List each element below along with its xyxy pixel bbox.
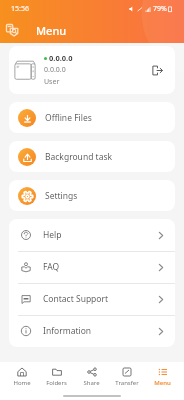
staticText: Home xyxy=(13,379,31,387)
button[interactable]: Logout xyxy=(148,61,166,79)
staticText: Menu xyxy=(36,23,67,38)
button[interactable]: Settings xyxy=(9,180,175,211)
staticText: Menu xyxy=(154,379,171,387)
staticText: Background task xyxy=(45,151,113,163)
button[interactable]: Contact Support xyxy=(9,283,175,315)
button[interactable]: Scan document xyxy=(4,22,20,38)
staticText: Information xyxy=(43,325,92,337)
staticText: Help xyxy=(43,229,62,241)
staticText: 0.0.0.0 xyxy=(44,65,66,75)
button[interactable]: Background task xyxy=(9,141,175,172)
button[interactable]: Home xyxy=(11,367,33,387)
staticText: Settings xyxy=(45,190,78,202)
button[interactable]: Help xyxy=(9,219,175,251)
staticText: User xyxy=(44,77,60,87)
button[interactable]: 0.0.0.0 xyxy=(9,46,175,94)
staticText: Share xyxy=(83,379,100,387)
button[interactable]: Information xyxy=(9,315,175,347)
button[interactable]: Menu xyxy=(152,367,173,387)
staticText: FAQ xyxy=(43,261,60,273)
button[interactable]: Folders xyxy=(44,367,69,387)
staticText: Offline Files xyxy=(45,112,92,124)
staticText: 0.0.0.0 xyxy=(49,53,73,63)
button[interactable]: FAQ xyxy=(9,251,175,283)
staticText: Folders xyxy=(46,379,67,387)
button[interactable]: Transfer xyxy=(113,367,141,387)
staticText: 79% xyxy=(153,4,167,14)
button[interactable]: Offline Files xyxy=(9,102,175,133)
staticText: Contact Support xyxy=(43,293,109,305)
staticText: Transfer xyxy=(115,379,139,387)
staticText: 15:56 xyxy=(11,4,29,14)
button[interactable]: Share xyxy=(81,367,102,387)
